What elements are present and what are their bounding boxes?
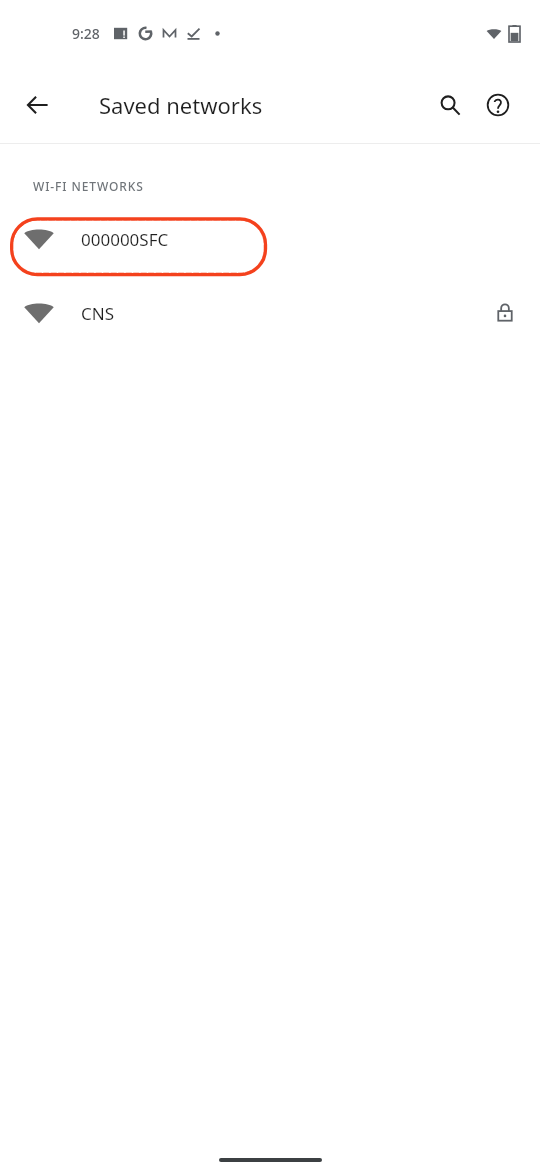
- staticText: 000000SFC: [81, 228, 169, 251]
- button[interactable]: Search: [426, 81, 474, 129]
- button[interactable]: CNS: [0, 276, 540, 350]
- staticText: Saved networks: [99, 90, 263, 120]
- button[interactable]: 000000SFC: [0, 202, 540, 276]
- button[interactable]: Back: [14, 81, 62, 129]
- staticText: 9:28: [72, 24, 100, 43]
- button[interactable]: Help: [474, 81, 522, 129]
- staticText: WI-FI NETWORKS: [33, 178, 144, 194]
- staticText: CNS: [81, 302, 114, 325]
